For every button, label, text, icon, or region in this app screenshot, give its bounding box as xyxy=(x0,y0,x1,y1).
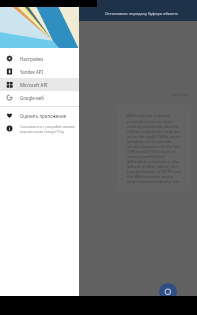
button[interactable]: Скачивается с разработчиками xyxy=(0,122,79,135)
button[interactable]: Search xyxy=(159,283,177,301)
button[interactable]: Although the Internet protocol suite has… xyxy=(127,113,181,183)
staticText: Microsoft API xyxy=(20,82,48,88)
staticText: Although the Internet protocol suite has… xyxy=(127,113,181,183)
staticText: Google-веб xyxy=(20,95,44,101)
staticText: wireless xyxy=(172,92,188,98)
button[interactable]: Yandex API xyxy=(0,65,79,78)
staticText: Скачивается с разработчиками xyxy=(20,124,75,129)
staticText: Настройки xyxy=(20,56,43,62)
staticText: Yandex API xyxy=(20,69,43,75)
button[interactable]: Google-веб xyxy=(0,91,79,104)
button[interactable]: Microsoft API xyxy=(0,78,79,91)
staticText: версии через Google Play xyxy=(20,129,65,134)
staticText: Оценить приложение xyxy=(20,113,67,119)
button[interactable]: Настройки xyxy=(0,52,79,65)
button[interactable]: Оценить приложение xyxy=(0,109,79,122)
staticText: Остановить передачу буфера обмена xyxy=(105,11,178,16)
